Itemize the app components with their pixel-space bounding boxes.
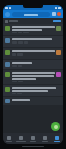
button[interactable]	[3, 24, 63, 35]
button[interactable]	[3, 36, 63, 47]
button[interactable]: Profile	[51, 133, 63, 144]
button[interactable]	[3, 97, 63, 105]
button[interactable]: Search	[12, 12, 50, 17]
button[interactable]: Library	[39, 133, 51, 144]
button[interactable]	[3, 60, 63, 69]
button[interactable]	[3, 85, 63, 96]
button[interactable]: Home	[3, 133, 15, 144]
button[interactable]: Menu	[5, 12, 10, 17]
button[interactable]: Grid view	[52, 12, 56, 16]
button[interactable]: Inbox	[27, 133, 39, 144]
button[interactable]	[3, 70, 63, 84]
button[interactable]	[3, 18, 63, 24]
button[interactable]: Subscriptions	[15, 133, 27, 144]
button[interactable]: Compose	[51, 122, 60, 131]
button[interactable]: Notifications	[57, 12, 61, 16]
button[interactable]	[3, 48, 63, 59]
